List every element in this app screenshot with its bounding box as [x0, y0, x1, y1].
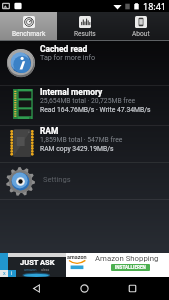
staticText: RAM copy 3429.19MB/s [40, 145, 114, 153]
button[interactable]: Results [57, 12, 113, 40]
staticText: INSTALLIEREN [115, 265, 146, 270]
staticText: Read 164.76MB/s · Write 47.34MB/s [40, 106, 151, 114]
staticText: i [11, 270, 13, 277]
button[interactable]: JUST ASK [0, 253, 169, 277]
button[interactable]: Settings [0, 163, 169, 199]
button[interactable]: Back [25, 277, 48, 300]
button[interactable]: About [113, 12, 169, 40]
button[interactable]: Home [73, 277, 96, 300]
staticText: Cached read [40, 44, 88, 54]
button[interactable]: RAM [0, 126, 169, 162]
staticText: Internal memory [40, 87, 103, 97]
staticText: amazon [24, 268, 37, 272]
staticText: amazon [67, 254, 87, 260]
button[interactable]: Recent apps [121, 277, 144, 300]
button[interactable]: Benchmark [0, 12, 57, 40]
staticText: Tap for more info [40, 53, 96, 61]
staticText: Amazon Shopping [95, 254, 159, 263]
button[interactable]: Internal memory [0, 86, 169, 125]
button[interactable]: Cached read [0, 41, 169, 85]
staticText: RAM [40, 126, 59, 136]
staticText: Benchmark [12, 30, 46, 38]
staticText: 25,654MB total · 20,725MB free [40, 97, 136, 105]
staticText: About [132, 30, 150, 38]
staticText: 18:41 [143, 0, 167, 12]
staticText: alexa [41, 268, 50, 272]
staticText: Results [74, 30, 96, 38]
staticText: JUST ASK [20, 258, 55, 267]
staticText: 1,859MB total · 547MB free [40, 136, 123, 144]
staticText: x [3, 270, 6, 277]
staticText: Settings [43, 175, 71, 184]
